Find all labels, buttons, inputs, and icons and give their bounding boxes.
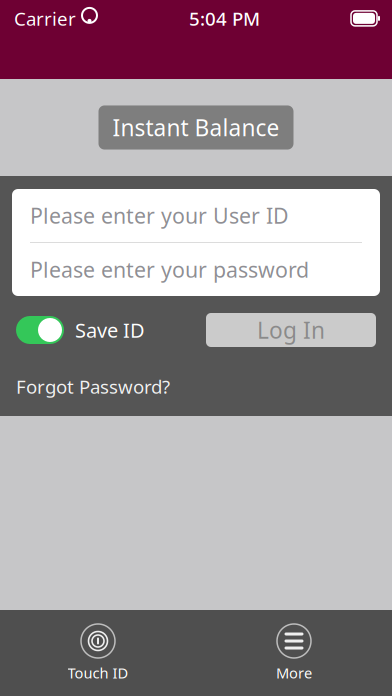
staticText: Log In bbox=[257, 315, 325, 345]
staticText: Touch ID bbox=[67, 663, 128, 682]
staticText: Forgot Password? bbox=[16, 374, 170, 399]
staticText: Carrier bbox=[14, 6, 76, 31]
button[interactable]: Log In bbox=[206, 313, 376, 347]
button[interactable]: Touch ID bbox=[53, 610, 143, 682]
button[interactable]: Instant Balance bbox=[98, 105, 293, 149]
staticText: More bbox=[276, 663, 312, 682]
button[interactable]: More bbox=[249, 610, 339, 682]
staticText: Save ID bbox=[75, 317, 145, 343]
staticText: Instant Balance bbox=[112, 112, 279, 142]
button[interactable]: Save ID bbox=[16, 316, 145, 344]
staticText: Please enter your password bbox=[30, 255, 309, 284]
staticText: 5:04 PM bbox=[189, 6, 260, 31]
button[interactable]: Forgot Password? bbox=[16, 374, 170, 399]
staticText: Please enter your User ID bbox=[30, 201, 289, 230]
